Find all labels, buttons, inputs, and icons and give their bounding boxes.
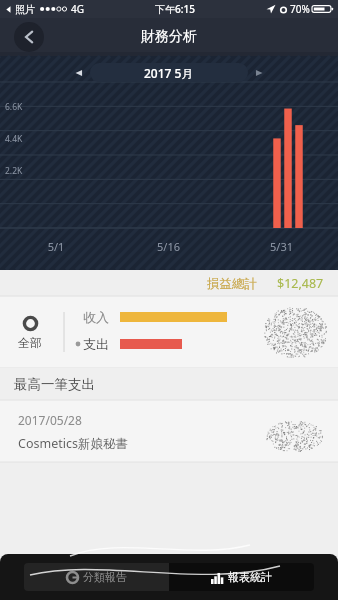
staticText: 分類報告 — [83, 570, 127, 584]
staticText: 5/16 — [112, 239, 225, 254]
button[interactable]: Previous month — [72, 66, 86, 80]
staticText: 5/31 — [225, 239, 338, 254]
button[interactable]: 報表統計 — [169, 563, 314, 591]
staticText: 最高一筆支出 — [14, 376, 95, 393]
button[interactable]: 損益總計 — [0, 270, 338, 296]
staticText: 照片 — [15, 3, 35, 16]
staticText: 6.6K — [5, 101, 23, 113]
staticText: 4G — [71, 2, 84, 16]
staticText: Cosmetics新娘秘書 — [18, 435, 128, 452]
staticText: 報表統計 — [228, 570, 272, 584]
button[interactable]: 分類報告 — [24, 563, 169, 591]
staticText: 支出 — [83, 336, 109, 352]
staticText: 財務分析 — [141, 28, 197, 46]
staticText: $12,487 — [277, 275, 324, 292]
button[interactable]: 全部 — [0, 296, 338, 368]
staticText: 2.2K — [5, 165, 23, 177]
staticText: 損益總計 — [207, 276, 257, 292]
staticText: 全部 — [18, 335, 42, 350]
staticText: 70% — [290, 2, 310, 16]
button[interactable]: Next month — [252, 66, 266, 80]
staticText: 5/1 — [0, 239, 112, 254]
button[interactable]: 2017/05/28 — [0, 400, 338, 462]
staticText: 4.4K — [5, 133, 23, 145]
button[interactable]: Back — [14, 22, 44, 52]
staticText: 收入 — [83, 309, 109, 325]
button[interactable]: 2017 5月 — [90, 63, 248, 82]
staticText: 下午6:15 — [155, 2, 195, 16]
staticText: 2017 5月 — [144, 65, 194, 81]
staticText: 2017/05/28 — [18, 412, 82, 428]
